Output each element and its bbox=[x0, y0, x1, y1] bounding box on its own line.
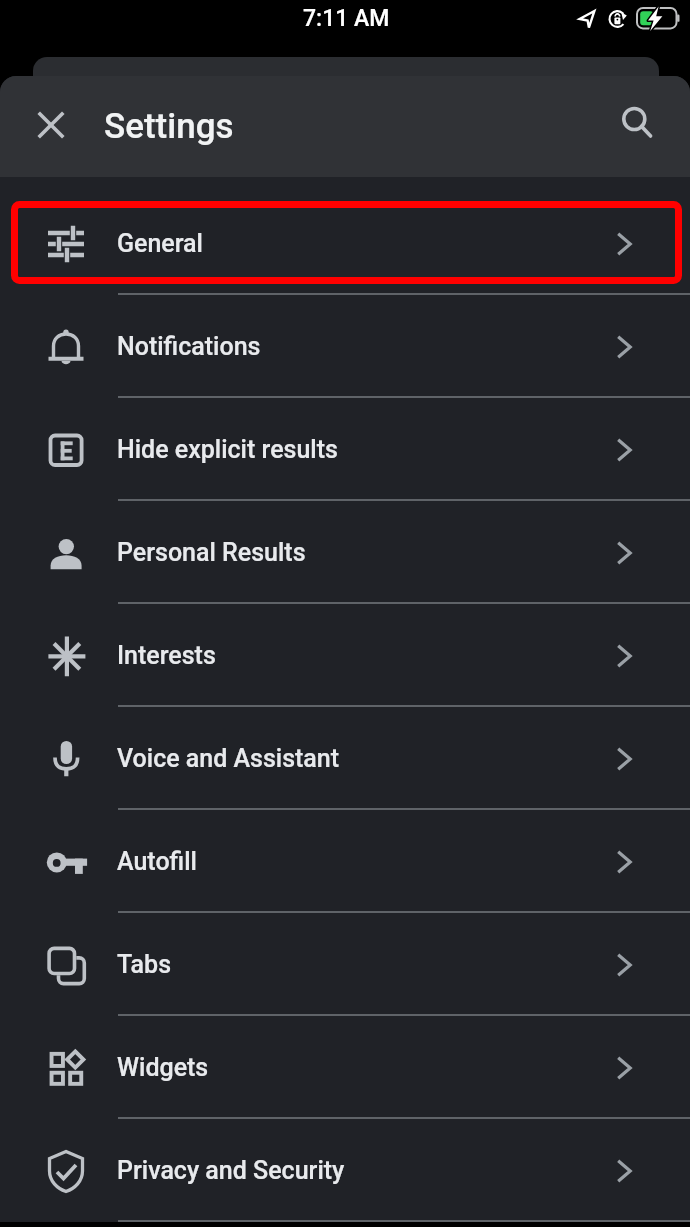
staticText: Settings bbox=[104, 106, 234, 147]
staticText: Autofill bbox=[117, 847, 197, 876]
button[interactable]: Privacy and Security bbox=[0, 1119, 690, 1222]
staticText: Notifications bbox=[117, 332, 261, 361]
button[interactable]: General bbox=[0, 192, 690, 295]
button[interactable]: Interests bbox=[0, 604, 690, 707]
staticText: Voice and Assistant bbox=[117, 744, 340, 773]
staticText: General bbox=[117, 229, 203, 258]
staticText: Interests bbox=[117, 641, 216, 670]
staticText: Hide explicit results bbox=[117, 435, 338, 464]
staticText: Tabs bbox=[117, 950, 172, 979]
staticText: Personal Results bbox=[117, 538, 306, 567]
button[interactable]: Hide explicit results bbox=[0, 398, 690, 501]
button[interactable]: Search bbox=[608, 99, 660, 151]
button[interactable]: Widgets bbox=[0, 1016, 690, 1119]
staticText: 7:11 AM bbox=[303, 5, 390, 32]
staticText: Widgets bbox=[117, 1053, 209, 1082]
button[interactable]: Tabs bbox=[0, 913, 690, 1016]
button[interactable]: Close bbox=[25, 99, 77, 151]
button[interactable]: Voice and Assistant bbox=[0, 707, 690, 810]
button[interactable]: Notifications bbox=[0, 295, 690, 398]
button[interactable]: Autofill bbox=[0, 810, 690, 913]
staticText: Privacy and Security bbox=[117, 1156, 345, 1185]
button[interactable]: Personal Results bbox=[0, 501, 690, 604]
